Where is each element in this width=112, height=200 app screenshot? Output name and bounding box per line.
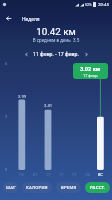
button[interactable]: ШАГ <box>3 182 18 193</box>
staticText: ЧТ <box>59 172 64 176</box>
button[interactable]: ВРЕМЯ <box>56 182 81 193</box>
staticText: ВРЕМЯ <box>61 185 77 190</box>
staticText: 3.02 км <box>80 66 101 73</box>
button[interactable]: Back <box>0 10 17 27</box>
staticText: Неделя <box>22 16 40 22</box>
button[interactable]: КАЛОРИЯ <box>22 182 52 193</box>
staticText: ШАГ <box>6 185 16 190</box>
staticText: 3 <box>5 114 8 119</box>
staticText: 3.41 <box>44 103 53 108</box>
button[interactable]: Next week <box>80 48 92 60</box>
staticText: 0 <box>5 167 8 172</box>
staticText: СР <box>46 172 51 176</box>
staticText: 10.42 км <box>0 26 112 37</box>
staticText: ПТ <box>72 172 77 176</box>
button[interactable]: Previous week <box>20 48 32 60</box>
staticText: ВТ <box>33 172 38 176</box>
staticText: В среднем в день 3.5 <box>0 38 112 43</box>
button[interactable]: РАССТ. <box>85 182 110 193</box>
staticText: 6 <box>5 61 8 66</box>
staticText: 11 февр. - 17 февр. <box>33 51 79 57</box>
staticText: РАССТ. <box>90 185 106 190</box>
staticText: 52% <box>85 3 92 7</box>
staticText: ПН <box>19 172 25 176</box>
staticText: КАЛОРИЯ <box>26 185 48 190</box>
staticText: СБ <box>85 172 90 176</box>
button[interactable]: 3.02 км <box>73 63 108 79</box>
staticText: 20:45 <box>98 2 109 7</box>
staticText: 17 февр. <box>83 73 99 77</box>
staticText: 3.99 <box>18 94 27 99</box>
staticText: ВС <box>98 172 103 176</box>
